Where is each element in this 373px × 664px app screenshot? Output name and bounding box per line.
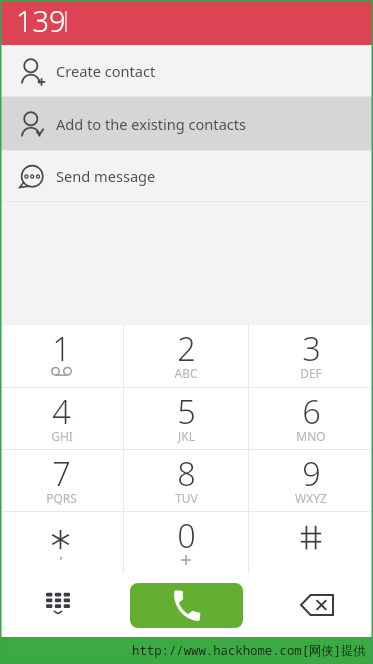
staticText: 7 [52, 451, 71, 495]
staticText: PQRS [46, 490, 77, 506]
button[interactable]: 6 [249, 388, 373, 449]
staticText: 0 [177, 513, 196, 557]
staticText: 4 [52, 389, 71, 433]
button[interactable]: 7 [0, 450, 123, 511]
button[interactable]: 4 [0, 388, 123, 449]
button[interactable]: 0 [124, 512, 248, 573]
button[interactable]: 2 [124, 325, 248, 387]
button[interactable]: Hide keypad [0, 573, 115, 637]
staticText: 6 [302, 389, 321, 433]
staticText: WXYZ [295, 490, 327, 506]
staticText: DEF [300, 365, 322, 381]
staticText: 3 [302, 326, 321, 370]
button[interactable]: Backspace [258, 573, 373, 637]
staticText: 5 [177, 389, 196, 433]
staticText: 1 [52, 326, 71, 370]
staticText: Add to the existing contacts [56, 114, 247, 134]
button[interactable] [249, 512, 373, 573]
button[interactable]: Create contact [0, 45, 373, 96]
staticText: JKL [178, 428, 195, 444]
staticText: TUV [175, 490, 198, 506]
button[interactable]: 1 [0, 325, 123, 387]
button[interactable]: Call [115, 573, 258, 637]
staticText: 139 [16, 1, 66, 40]
staticText: http://www.hackhome.com[网侠]提供 [132, 642, 366, 659]
staticText: 9 [302, 451, 321, 495]
staticText: 8 [177, 451, 196, 495]
button[interactable] [0, 512, 123, 573]
button[interactable]: 3 [249, 325, 373, 387]
staticText: 2 [177, 326, 196, 370]
staticText: MNO [296, 428, 326, 444]
button[interactable]: 9 [249, 450, 373, 511]
staticText: Create contact [56, 61, 156, 81]
button[interactable]: Send message [0, 151, 373, 201]
staticText: Send message [56, 166, 156, 186]
button[interactable]: Add to the existing contacts [0, 97, 373, 150]
staticText: ABC [174, 365, 198, 381]
button[interactable]: 8 [124, 450, 248, 511]
button[interactable]: 5 [124, 388, 248, 449]
staticText: GHI [51, 428, 73, 444]
